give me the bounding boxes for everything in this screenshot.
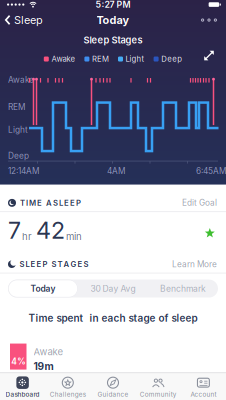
staticText: Time spent in each stage of sleep [28, 312, 197, 324]
staticText: 12:14AM [8, 166, 39, 176]
staticText: Deep [8, 151, 29, 161]
button[interactable]: Benchmark [148, 280, 218, 298]
staticText: 42 [36, 216, 65, 244]
button[interactable]: Sleep [0, 13, 43, 27]
button[interactable]: Guidance [90, 374, 136, 400]
button[interactable]: Challenges [45, 374, 90, 400]
staticText: Challenges [50, 391, 86, 398]
staticText: Light [126, 54, 145, 64]
staticText: 4% [11, 357, 25, 367]
staticText: Learn More [172, 259, 217, 269]
staticText: REM [92, 54, 109, 64]
button[interactable] [201, 18, 226, 22]
staticText: 7 [8, 216, 21, 244]
button[interactable]: Account [181, 374, 226, 400]
button[interactable]: Today [8, 280, 78, 298]
staticText: hr [22, 231, 32, 242]
staticText: Account [190, 391, 216, 398]
staticText: 19m [33, 360, 53, 372]
staticText: T I M E A S L E E P [20, 198, 81, 208]
staticText: REM [8, 102, 25, 112]
staticText: min [66, 231, 82, 242]
staticText: S L E E P S T A G E S [20, 259, 89, 269]
staticText: Sleep [14, 13, 43, 27]
staticText: Community [140, 391, 177, 398]
staticText: Awake [33, 346, 63, 358]
staticText: Today [30, 283, 55, 294]
button[interactable]: 30 Day Avg [78, 280, 148, 298]
staticText: Deep [161, 54, 182, 64]
staticText: 30 Day Avg [90, 283, 135, 294]
staticText: Edit Goal [182, 198, 217, 208]
staticText: Guidance [97, 391, 128, 398]
staticText: Benchmark [160, 283, 206, 294]
staticText: Today [96, 13, 129, 27]
staticText: Awake [51, 54, 75, 64]
staticText: Sleep Stages [83, 35, 142, 46]
staticText: Dashboard [6, 391, 40, 398]
button[interactable]: Community [136, 374, 181, 400]
staticText: 5:27 PM [95, 0, 130, 10]
staticText: Light [8, 125, 28, 135]
staticText: 4AM [107, 166, 125, 176]
staticText: Awake [8, 75, 34, 85]
button[interactable]: Learn More [172, 259, 217, 269]
button[interactable]: Dashboard [0, 374, 45, 400]
button[interactable]: Edit Goal [182, 198, 217, 208]
staticText: 6:45AM [196, 166, 226, 176]
button[interactable] [203, 50, 215, 62]
